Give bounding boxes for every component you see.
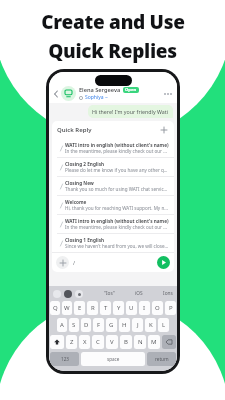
button[interactable]: I bbox=[139, 301, 150, 315]
staticText: L bbox=[162, 321, 166, 329]
staticText: Closing New bbox=[65, 180, 94, 186]
staticText: K bbox=[149, 321, 153, 329]
button[interactable]: T bbox=[100, 301, 111, 315]
staticText: B bbox=[124, 338, 128, 346]
staticText: Since we haven't heard from you, we will… bbox=[65, 243, 169, 249]
staticText: V bbox=[110, 338, 114, 346]
staticText: R bbox=[91, 304, 95, 312]
staticText: Create and Use bbox=[41, 9, 185, 35]
button[interactable]: Closing New bbox=[52, 177, 174, 195]
button[interactable]: X bbox=[79, 335, 90, 349]
button[interactable]: 123 bbox=[50, 352, 79, 366]
staticText: Z bbox=[70, 338, 74, 346]
button[interactable]: C bbox=[92, 335, 104, 349]
button[interactable]: Markup pen bbox=[64, 290, 72, 298]
staticText: WATI intro in english (without client's … bbox=[65, 142, 169, 148]
staticText: T bbox=[104, 304, 108, 312]
staticText: O bbox=[155, 304, 160, 312]
button[interactable]: Add quick reply bbox=[159, 125, 169, 135]
button[interactable]: Z bbox=[66, 335, 77, 349]
button[interactable]: L bbox=[158, 318, 169, 332]
button[interactable]: H bbox=[119, 318, 130, 332]
button[interactable]: return bbox=[147, 352, 176, 366]
staticText: Elena Sergeeva bbox=[79, 86, 121, 94]
button[interactable]: V bbox=[106, 335, 118, 349]
staticText: WATI intro in english (without client's … bbox=[65, 218, 169, 224]
staticText: M bbox=[151, 338, 157, 346]
staticText: Thank you so much for using WATI chat se… bbox=[65, 186, 169, 192]
button[interactable]: O bbox=[152, 301, 163, 315]
staticText: Welcome bbox=[65, 199, 87, 205]
staticText: P bbox=[169, 304, 173, 312]
button[interactable]: N bbox=[134, 335, 146, 349]
staticText: U bbox=[129, 304, 134, 312]
button[interactable]: G bbox=[106, 318, 117, 332]
button[interactable]: WATI intro in english (without client's … bbox=[52, 139, 174, 157]
button[interactable]: F bbox=[93, 318, 104, 332]
button[interactable]: P bbox=[165, 301, 176, 315]
staticText: In the meantime, please kindly check out… bbox=[65, 148, 169, 154]
button[interactable]: R bbox=[87, 301, 98, 315]
staticText: Closing 1 English bbox=[65, 237, 105, 243]
staticText: Y bbox=[117, 304, 121, 312]
staticText: 123 bbox=[61, 356, 69, 362]
button[interactable]: A bbox=[57, 318, 67, 332]
staticText: W bbox=[64, 304, 70, 312]
staticText: I bbox=[143, 304, 146, 312]
staticText: F bbox=[97, 321, 101, 329]
button[interactable]: Backspace bbox=[162, 335, 176, 349]
button[interactable]: Attach bbox=[56, 256, 69, 269]
staticText: / bbox=[73, 259, 76, 266]
staticText: J bbox=[137, 321, 139, 329]
button[interactable]: Closing 2 English bbox=[52, 158, 174, 176]
staticText: "Ios" bbox=[104, 290, 115, 297]
button[interactable]: Back bbox=[50, 88, 61, 99]
staticText: Hi, thank you for reaching WATI support.… bbox=[65, 205, 169, 211]
staticText: H bbox=[122, 321, 127, 329]
button[interactable]: B bbox=[120, 335, 132, 349]
staticText: S bbox=[72, 321, 76, 329]
button[interactable]: S bbox=[69, 318, 79, 332]
button[interactable]: Shift bbox=[50, 335, 64, 349]
staticText: Quick Replies bbox=[48, 38, 177, 64]
button[interactable]: W bbox=[62, 301, 72, 315]
staticText: In the meantime, please kindly check out… bbox=[65, 224, 169, 230]
staticText: return bbox=[155, 356, 169, 362]
button[interactable]: Q bbox=[50, 301, 60, 315]
button[interactable]: WATI intro in english (without client's … bbox=[52, 215, 174, 233]
button[interactable]: More options bbox=[161, 87, 175, 101]
staticText: A bbox=[60, 321, 64, 329]
button[interactable]: J bbox=[132, 318, 143, 332]
button[interactable]: M bbox=[148, 335, 160, 349]
staticText: Closing 2 English bbox=[65, 161, 105, 167]
button[interactable]: E bbox=[74, 301, 85, 315]
staticText: Open bbox=[125, 87, 137, 93]
staticText: space bbox=[107, 356, 120, 362]
button[interactable]: space bbox=[81, 352, 145, 366]
button[interactable]: Send bbox=[157, 256, 170, 269]
staticText: C bbox=[96, 338, 100, 346]
button[interactable]: Emoji bbox=[53, 290, 61, 298]
button[interactable]: D bbox=[81, 318, 91, 332]
button[interactable]: K bbox=[145, 318, 156, 332]
staticText: Ions bbox=[163, 290, 173, 297]
button[interactable]: Y bbox=[113, 301, 124, 315]
button[interactable]: Stickers bbox=[75, 290, 83, 298]
button[interactable]: U bbox=[126, 301, 137, 315]
staticText: G bbox=[109, 321, 114, 329]
staticText: Please do let me know if you have any ot… bbox=[65, 167, 169, 173]
staticText: X bbox=[83, 338, 87, 346]
staticText: Sophiya ~ bbox=[85, 94, 108, 101]
staticText: Hi there! I'm your friendly Wati bbox=[92, 108, 169, 115]
staticText: iOS bbox=[135, 290, 143, 297]
button[interactable]: Welcome bbox=[52, 196, 174, 214]
button[interactable]: Closing 1 English bbox=[52, 234, 174, 252]
staticText: E bbox=[78, 304, 82, 312]
staticText: Quick Reply bbox=[57, 126, 92, 134]
staticText: D bbox=[84, 321, 89, 329]
staticText: Q bbox=[53, 304, 58, 312]
staticText: N bbox=[138, 338, 143, 346]
